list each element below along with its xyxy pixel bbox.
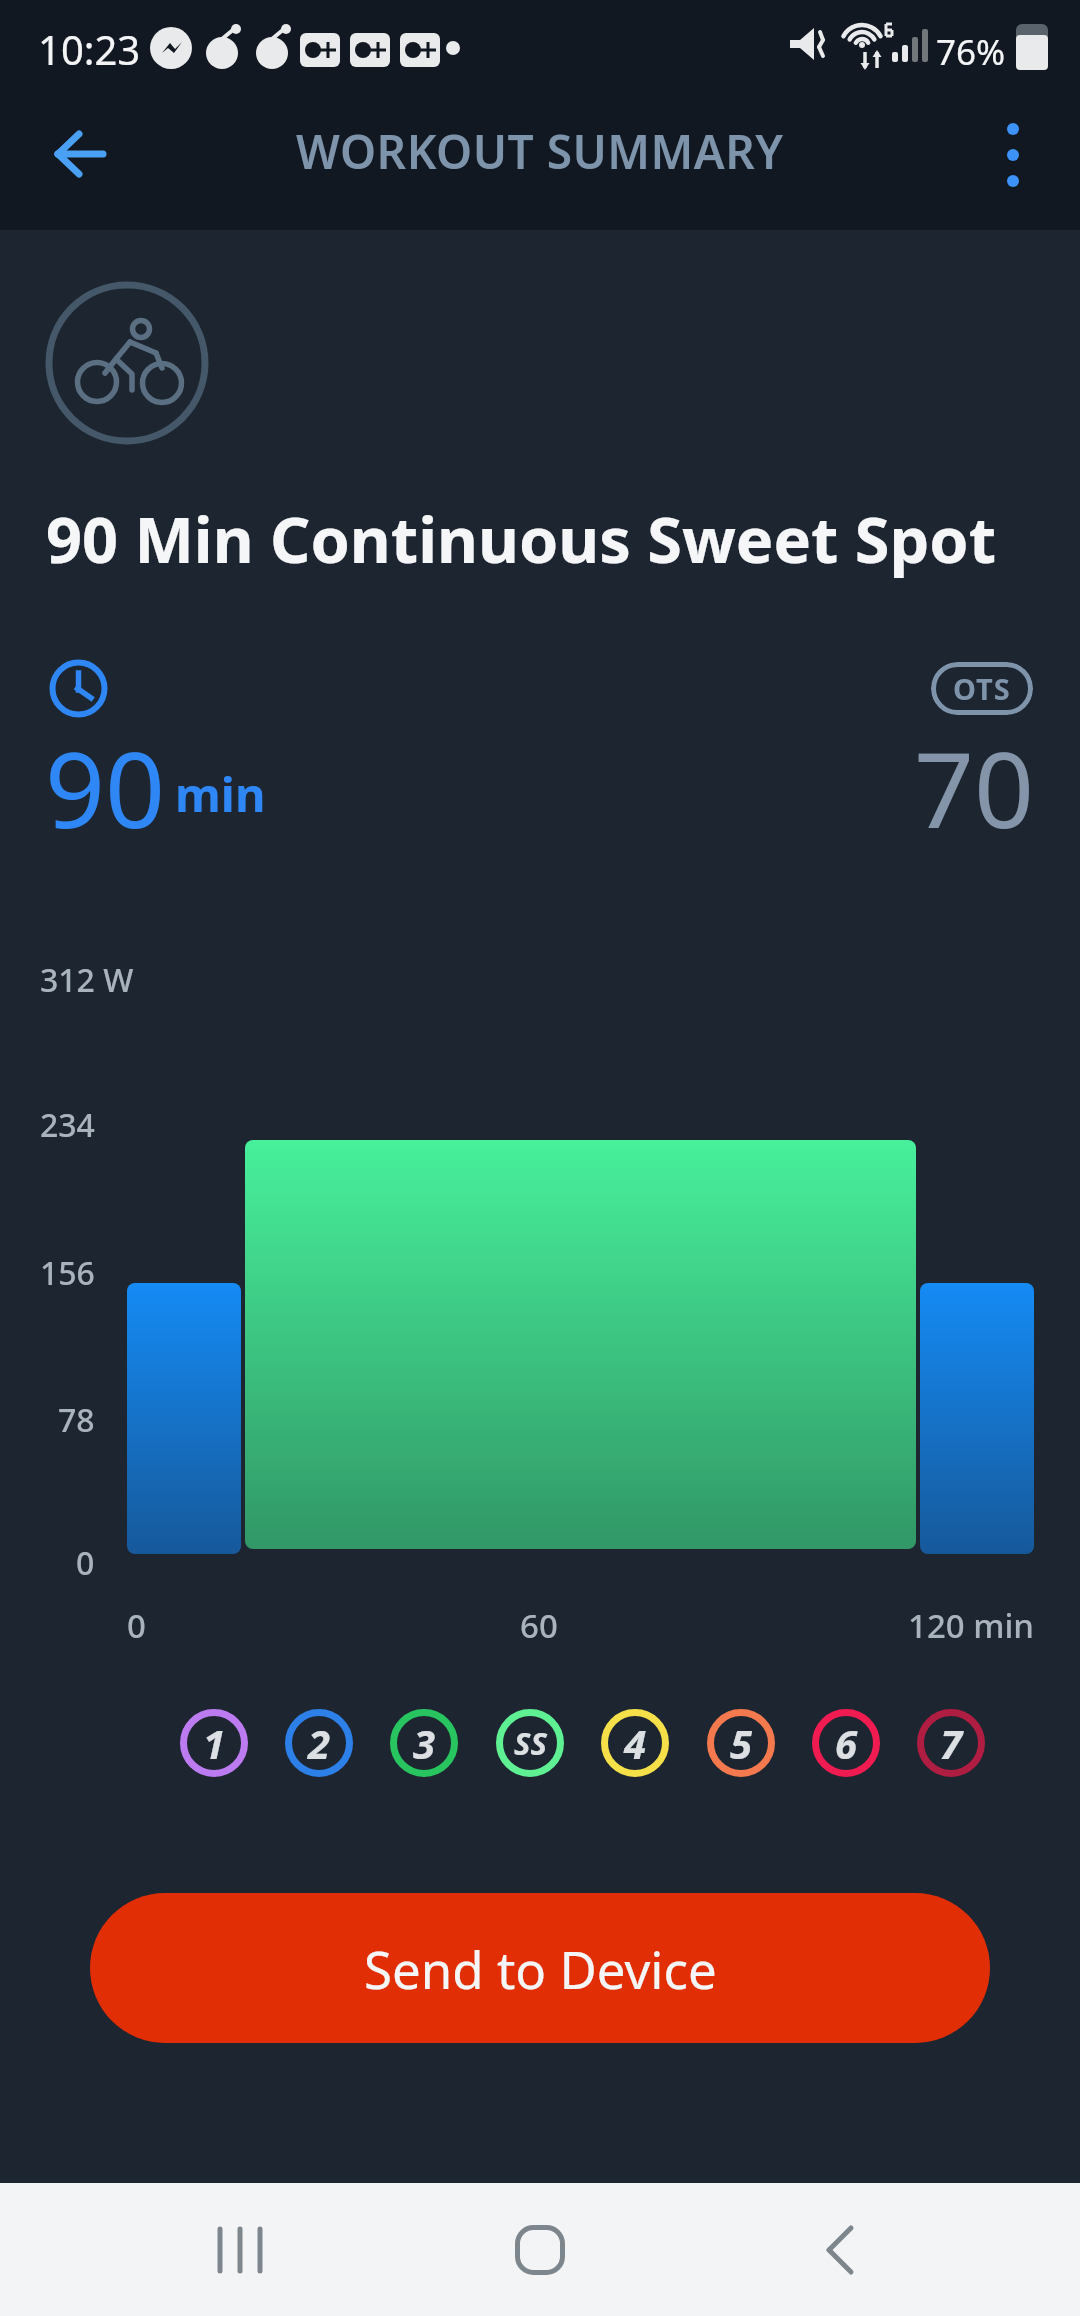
staticText: 120 min (908, 1603, 1035, 1648)
staticText: Send to Device (364, 1934, 717, 2003)
button[interactable] (780, 2183, 900, 2316)
staticText: 3 (413, 1716, 436, 1770)
staticText: 7 (940, 1716, 963, 1770)
staticText: OTS (953, 669, 1011, 708)
staticText: 4 (624, 1716, 647, 1770)
staticText: 234 (40, 1103, 95, 1147)
staticText: 70 (914, 716, 1035, 859)
button[interactable] (970, 110, 1055, 200)
button[interactable]: 6 (812, 1709, 880, 1777)
staticText: 2 (308, 1716, 331, 1770)
staticText: 10:23 (38, 22, 141, 76)
button[interactable] (180, 2183, 300, 2316)
button[interactable]: 3 (390, 1709, 458, 1777)
staticText: min (175, 762, 266, 826)
staticText: 6 (835, 1716, 858, 1770)
button[interactable] (36, 110, 124, 198)
button[interactable]: 4 (601, 1709, 669, 1777)
staticText: SS (514, 1722, 547, 1764)
staticText: 156 (40, 1251, 95, 1295)
staticText: 5 (730, 1716, 753, 1770)
staticText: WORKOUT SUMMARY (296, 120, 784, 183)
button[interactable]: 7 (917, 1709, 985, 1777)
staticText: 0 (127, 1603, 146, 1648)
staticText: 60 (520, 1603, 558, 1648)
staticText: 90 Min Continuous Sweet Spot (46, 496, 997, 582)
button[interactable]: 1 (180, 1709, 248, 1777)
staticText: 0 (76, 1541, 95, 1585)
staticText: 90 (45, 716, 166, 859)
button[interactable]: SS (496, 1709, 564, 1777)
button[interactable] (480, 2183, 600, 2316)
button[interactable]: 2 (285, 1709, 353, 1777)
staticText: 76% (936, 28, 1006, 76)
staticText: 78 (58, 1398, 95, 1442)
button[interactable]: 5 (707, 1709, 775, 1777)
button[interactable]: Send to Device (90, 1893, 990, 2043)
staticText: 1 (203, 1716, 226, 1770)
staticText: 312 W (40, 958, 134, 1002)
